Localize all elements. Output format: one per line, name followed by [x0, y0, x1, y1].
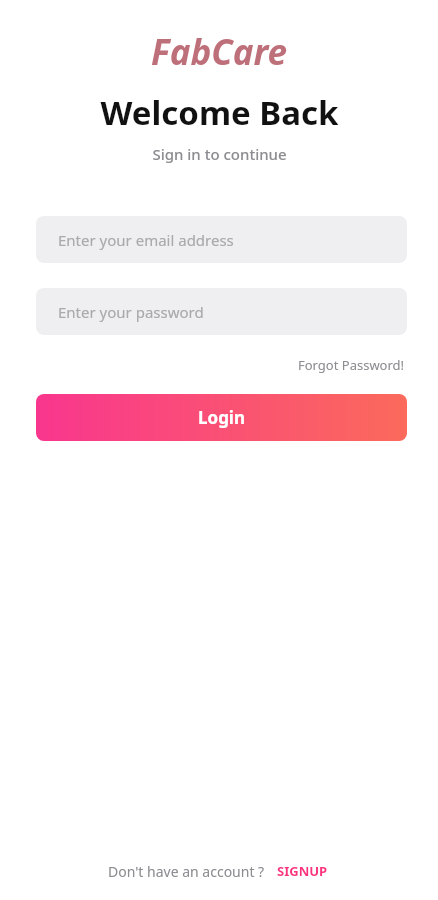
staticText: FabCare [151, 28, 287, 76]
staticText: Welcome Back [100, 90, 339, 135]
button[interactable]: Forgot Password! [296, 353, 407, 377]
button[interactable]: Login [36, 394, 407, 441]
staticText: Sign in to continue [152, 144, 287, 164]
staticText: Enter your password [58, 302, 204, 322]
button[interactable]: SIGNUP [275, 859, 330, 883]
staticText: Enter your email address [58, 230, 234, 250]
button[interactable]: Password field [36, 288, 407, 335]
staticText: Don't have an account ? [108, 862, 265, 881]
staticText: SIGNUP [277, 862, 328, 880]
staticText: Login [198, 406, 246, 429]
button[interactable]: Email address field [36, 216, 407, 263]
staticText: Forgot Password! [298, 356, 405, 374]
